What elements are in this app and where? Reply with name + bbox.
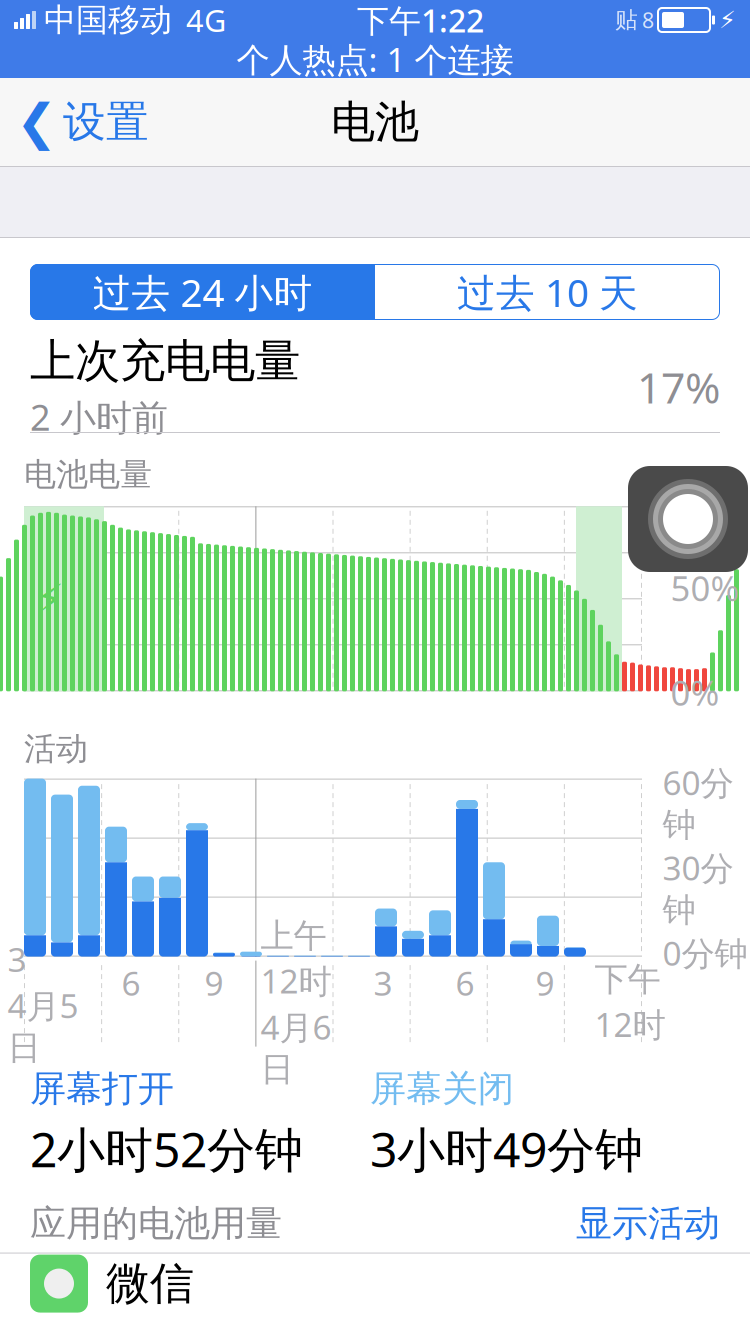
staticText: 8 xyxy=(642,6,654,34)
staticText: 上午 xyxy=(260,915,326,956)
staticText: 2 小时前 xyxy=(30,393,168,441)
staticText: 电池 xyxy=(331,95,419,149)
staticText: 设置 xyxy=(63,96,149,148)
staticText: 6 xyxy=(455,961,474,1005)
staticText: 贴 xyxy=(615,6,638,34)
staticText: 显示活动 xyxy=(576,1201,720,1246)
staticText: 12时 xyxy=(260,958,331,1003)
staticText: 2小时52分钟 xyxy=(30,1117,303,1180)
staticText: 0分钟 xyxy=(662,931,747,975)
staticText: 电池电量 xyxy=(24,455,152,494)
button[interactable]: 微信 xyxy=(0,1254,750,1314)
staticText: 下午 xyxy=(594,959,660,1000)
staticText: ⚡︎ xyxy=(719,6,736,34)
staticText: 3 xyxy=(373,961,392,1005)
staticText: 过去 10 天 xyxy=(457,266,638,318)
staticText: 17% xyxy=(637,359,720,415)
staticText: 屏幕关闭 xyxy=(370,1067,514,1111)
staticText: 上次充电电量 xyxy=(30,333,300,389)
staticText: 30分钟 xyxy=(662,845,733,931)
staticText: 3 xyxy=(7,937,26,981)
staticText: 活动 xyxy=(24,729,88,769)
staticText: 50% xyxy=(670,565,739,611)
staticText: 6 xyxy=(121,961,140,1005)
staticText: 9 xyxy=(204,961,223,1005)
staticText: 中国移动 xyxy=(44,0,172,40)
button[interactable]: 过去 10 天 xyxy=(375,264,720,320)
staticText: 4月6日 xyxy=(260,1005,331,1090)
button[interactable]: ❮ xyxy=(0,78,165,166)
staticText: 9 xyxy=(535,961,554,1005)
button[interactable]: 显示活动 xyxy=(576,1201,720,1246)
staticText: ❮ xyxy=(16,94,57,150)
staticText: 4月5日 xyxy=(7,983,78,1068)
staticText: 屏幕打开 xyxy=(30,1067,174,1111)
staticText: 4G xyxy=(186,0,226,40)
staticText: 微信 xyxy=(106,1256,194,1310)
staticText: 下午1:22 xyxy=(357,0,484,41)
staticText: 过去 24 小时 xyxy=(92,266,312,318)
staticText: 12时 xyxy=(594,1002,665,1046)
staticText: 个人热点: 1 个连接 xyxy=(236,37,513,81)
staticText: 60分钟 xyxy=(662,760,733,845)
staticText: 0% xyxy=(670,669,719,715)
staticText: 应用的电池用量 xyxy=(30,1201,282,1246)
staticText: 3小时49分钟 xyxy=(370,1117,643,1180)
staticText: ⚡︎ xyxy=(36,576,64,621)
button[interactable]: 过去 24 小时 xyxy=(30,264,375,320)
